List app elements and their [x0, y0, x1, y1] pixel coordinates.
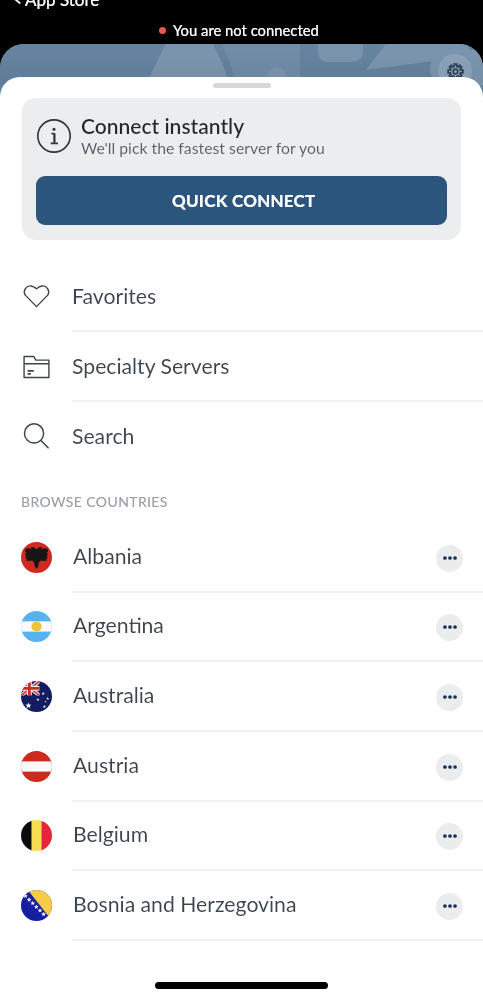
- button[interactable]: Argentina: [0, 593, 483, 662]
- staticText: Bosnia and Herzegovina: [73, 891, 297, 916]
- button[interactable]: More options for Albania: [436, 545, 463, 572]
- button[interactable]: QUICK CONNECT: [36, 176, 447, 225]
- staticText: We'll pick the fastest server for you: [81, 138, 325, 157]
- staticText: Albania: [73, 543, 143, 568]
- button[interactable]: More options for Australia: [436, 684, 463, 711]
- staticText: Argentina: [73, 612, 164, 637]
- staticText: Specialty Servers: [72, 353, 230, 378]
- staticText: App Store: [25, 0, 100, 9]
- button[interactable]: Australia: [0, 662, 483, 732]
- button[interactable]: More options for Belgium: [436, 823, 463, 850]
- staticText: BROWSE COUNTRIES: [21, 493, 168, 510]
- button[interactable]: Favorites: [0, 262, 483, 332]
- button[interactable]: Belgium: [0, 802, 483, 871]
- button[interactable]: Search: [0, 402, 483, 472]
- button[interactable]: Austria: [0, 732, 483, 802]
- staticText: Austria: [73, 752, 139, 777]
- staticText: Belgium: [73, 821, 149, 846]
- staticText: Search: [72, 423, 135, 448]
- staticText: Connect instantly: [81, 113, 245, 138]
- button[interactable]: Albania: [0, 523, 483, 593]
- staticText: Australia: [73, 682, 155, 707]
- button[interactable]: Settings: [438, 54, 472, 88]
- staticText: Favorites: [72, 283, 157, 308]
- button[interactable]: Specialty Servers: [0, 332, 483, 402]
- staticText: You are not connected: [173, 21, 319, 39]
- staticText: QUICK CONNECT: [172, 190, 316, 210]
- button[interactable]: More options for Austria: [436, 754, 463, 781]
- button[interactable]: More options for Argentina: [436, 614, 463, 641]
- button[interactable]: More options for Bosnia and Herzegovina: [436, 893, 463, 920]
- button[interactable]: Bosnia and Herzegovina: [0, 871, 483, 941]
